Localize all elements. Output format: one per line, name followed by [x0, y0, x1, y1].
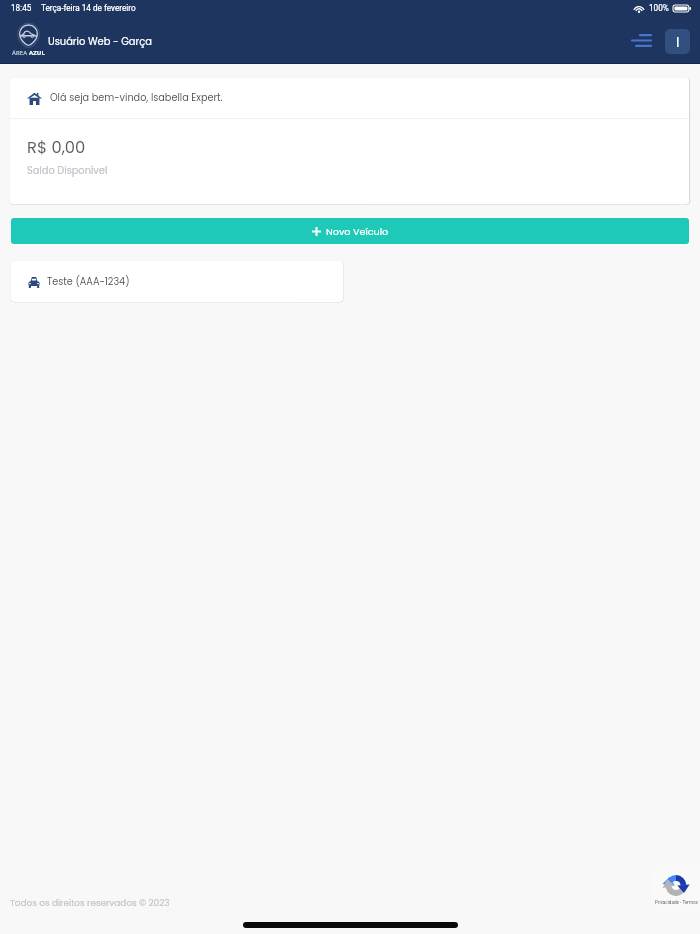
- staticText: Novo Veículo: [326, 225, 389, 238]
- staticText: Terça-feira 14 de fevereiro: [41, 3, 136, 13]
- staticText: Todos os direitos reservados © 2023: [10, 897, 170, 909]
- button[interactable]: Conta do usuário: [665, 29, 690, 54]
- staticText: 100%: [649, 3, 669, 13]
- staticText: R$ 0,00: [27, 136, 86, 159]
- other: Área Azul logo: [11, 25, 45, 59]
- staticText: 18:45: [11, 3, 32, 13]
- button[interactable]: Teste (AAA-1234): [11, 261, 343, 302]
- button[interactable]: Olá seja bem-vindo, Isabella Expert.: [10, 78, 689, 118]
- button[interactable]: Novo Veículo: [11, 218, 689, 244]
- staticText: Teste (AAA-1234): [47, 275, 130, 289]
- staticText: ÁREA: [12, 49, 29, 57]
- staticText: I: [676, 32, 680, 52]
- staticText: AZUL: [29, 49, 45, 57]
- staticText: Privacidade - Termos: [655, 900, 698, 905]
- staticText: Usuário Web - Garça: [48, 35, 152, 49]
- button[interactable]: Menu: [628, 27, 654, 53]
- staticText: Saldo Disponível: [27, 164, 108, 178]
- button[interactable]: reCAPTCHA — Privacidade e Termos: [652, 868, 700, 910]
- staticText: Olá seja bem-vindo, Isabella Expert.: [50, 91, 223, 105]
